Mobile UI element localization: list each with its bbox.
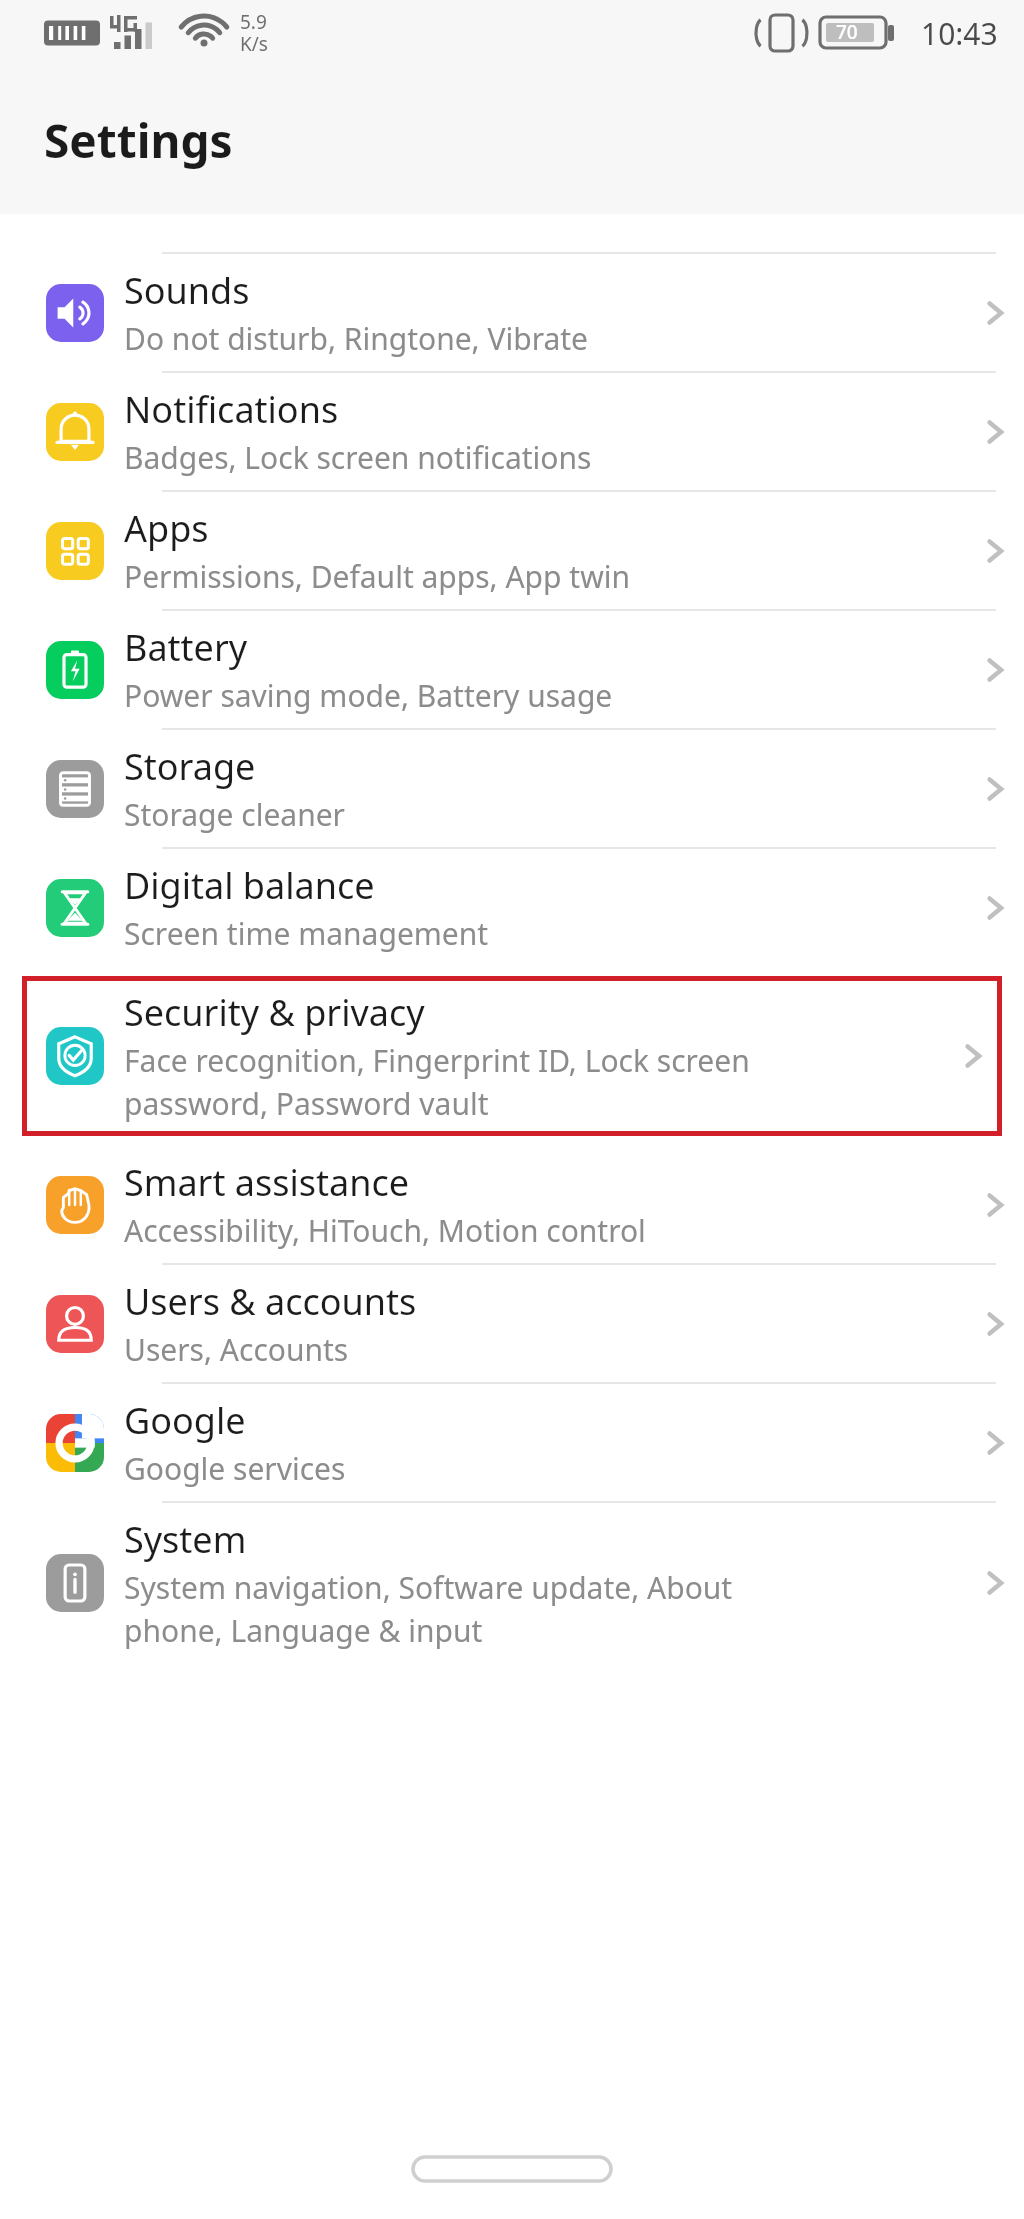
staticText: Users, Accounts xyxy=(124,1329,349,1370)
staticText: Google services xyxy=(124,1448,346,1489)
button[interactable]: Sounds xyxy=(0,254,1024,371)
staticText: Security & privacy xyxy=(124,988,425,1037)
staticText: Google xyxy=(124,1396,246,1445)
staticText: Notifications xyxy=(124,385,339,434)
staticText: Storage xyxy=(124,742,256,791)
button[interactable]: Smart assistance xyxy=(0,1146,1024,1263)
staticText: Badges, Lock screen notifications xyxy=(124,437,592,478)
button[interactable]: Users & accounts xyxy=(0,1265,1024,1382)
staticText: 70 xyxy=(836,19,858,45)
staticText: Face recognition, Fingerprint ID, Lock s… xyxy=(124,1040,750,1124)
button[interactable]: Apps xyxy=(0,492,1024,609)
button[interactable]: Battery xyxy=(0,611,1024,728)
staticText: Settings xyxy=(44,109,233,172)
button[interactable]: Digital balance xyxy=(0,849,1024,966)
other: Home gesture xyxy=(413,2157,611,2181)
staticText: Battery xyxy=(124,623,248,672)
button[interactable]: Google xyxy=(0,1384,1024,1501)
button[interactable]: Notifications xyxy=(0,373,1024,490)
staticText: 5.9 K/s xyxy=(240,9,268,57)
button[interactable]: System xyxy=(0,1503,1024,1663)
staticText: Do not disturb, Ringtone, Vibrate xyxy=(124,318,589,359)
staticText: Digital balance xyxy=(124,861,375,910)
staticText: Users & accounts xyxy=(124,1277,417,1326)
staticText: Accessibility, HiTouch, Motion control xyxy=(124,1210,646,1251)
staticText: Sounds xyxy=(124,266,250,315)
button[interactable]: Security & privacy xyxy=(22,976,1002,1136)
staticText: Screen time management xyxy=(124,913,489,954)
staticText: System navigation, Software update, Abou… xyxy=(124,1567,733,1651)
staticText: 10:43 xyxy=(921,13,998,54)
staticText: System xyxy=(124,1515,247,1564)
staticText: Permissions, Default apps, App twin xyxy=(124,556,631,597)
button[interactable]: Storage xyxy=(0,730,1024,847)
staticText: Power saving mode, Battery usage xyxy=(124,675,613,716)
staticText: Smart assistance xyxy=(124,1158,410,1207)
staticText: Apps xyxy=(124,504,209,553)
staticText: Storage cleaner xyxy=(124,794,345,835)
